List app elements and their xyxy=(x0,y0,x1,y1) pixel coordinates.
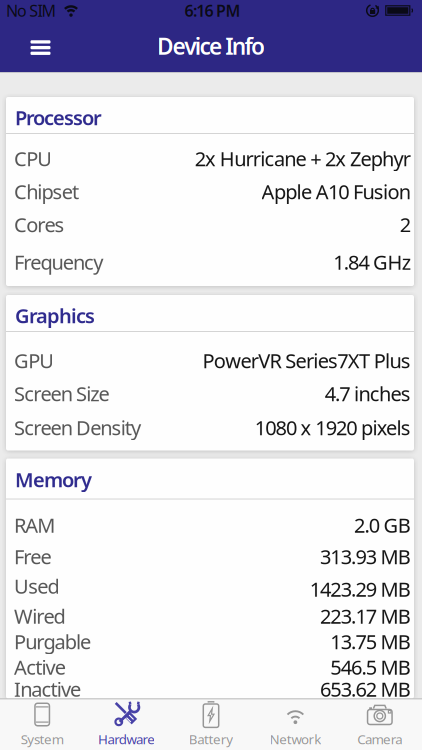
staticText: Processor xyxy=(15,104,102,131)
staticText: 4.7 inches xyxy=(325,380,411,407)
staticText: Chipset xyxy=(14,178,79,205)
staticText: Wired xyxy=(14,603,66,629)
staticText: Frequency xyxy=(14,249,103,275)
staticText: CPU xyxy=(14,145,52,172)
staticText: 1080 x 1920 pixels xyxy=(255,414,411,441)
staticText: Screen Density xyxy=(14,414,141,441)
staticText: 2 xyxy=(400,211,411,238)
staticText: Memory xyxy=(15,466,92,493)
staticText: Inactive xyxy=(14,676,81,702)
staticText: Network xyxy=(270,730,321,748)
staticText: PowerVR Series7XT Plus xyxy=(202,347,411,374)
staticText: 653.62 MB xyxy=(320,676,411,702)
staticText: 6:16 PM xyxy=(185,0,240,21)
button[interactable]: System xyxy=(0,699,84,750)
staticText: Purgable xyxy=(14,628,91,655)
button[interactable]: Network xyxy=(253,699,338,750)
staticText: Screen Size xyxy=(14,380,109,407)
button[interactable]: Menu xyxy=(0,20,64,72)
staticText: Apple A10 Fusion xyxy=(262,178,411,205)
staticText: Device Info xyxy=(157,31,265,61)
staticText: Free xyxy=(14,543,51,570)
staticText: RAM xyxy=(14,512,55,538)
button[interactable]: Camera xyxy=(338,699,422,750)
staticText: 313.93 MB xyxy=(320,543,411,570)
button[interactable]: Hardware xyxy=(84,699,169,750)
staticText: Battery xyxy=(189,730,233,748)
staticText: System xyxy=(21,730,64,748)
staticText: No SIM xyxy=(6,0,56,21)
staticText: 546.5 MB xyxy=(330,654,411,680)
staticText: Used xyxy=(14,573,59,599)
staticText: Graphics xyxy=(15,302,95,329)
staticText: 2.0 GB xyxy=(354,512,411,538)
staticText: 1.84 GHz xyxy=(333,249,411,275)
staticText: Hardware xyxy=(98,730,155,748)
staticText: Active xyxy=(14,654,66,680)
staticText: 223.17 MB xyxy=(320,603,411,629)
button[interactable]: Battery xyxy=(169,699,253,750)
staticText: 2x Hurricane + 2x Zephyr xyxy=(195,145,411,172)
staticText: GPU xyxy=(14,347,54,374)
staticText: 13.75 MB xyxy=(330,628,411,655)
staticText: Cores xyxy=(14,211,65,238)
staticText: Camera xyxy=(357,730,402,748)
staticText: 1423.29 MB xyxy=(310,576,411,602)
